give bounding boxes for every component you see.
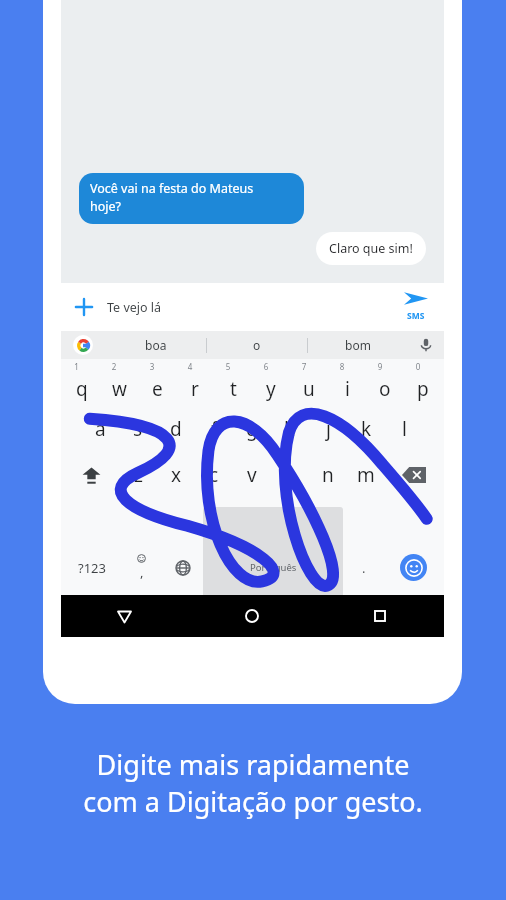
staticText: 1 [58,361,95,372]
button[interactable]: r [176,359,214,406]
staticText: 6 [247,361,285,372]
staticText: z [134,462,143,488]
staticText: Português [250,561,297,574]
button[interactable]: Backspace [385,452,442,498]
staticText: y [266,376,276,402]
staticText: e [152,376,163,402]
button[interactable]: a [81,406,119,452]
staticText: , [140,563,144,581]
staticText: n [322,462,334,488]
staticText: u [303,376,315,402]
staticText: com a Digitação por gesto. [0,783,506,820]
button[interactable]: m [347,452,385,498]
button[interactable]: s [119,406,157,452]
staticText: a [95,416,106,442]
staticText: 7 [285,361,323,372]
staticText: Te vejo lá [107,299,162,316]
button[interactable]: Português [203,507,343,628]
button[interactable]: , [121,498,162,637]
button[interactable]: g [233,406,271,452]
staticText: boa [145,337,167,353]
button[interactable]: f [195,406,233,452]
staticText: d [170,416,182,442]
button[interactable]: l [385,406,423,452]
button[interactable]: p [404,359,442,406]
button[interactable]: o [366,359,404,406]
staticText: v [247,462,257,488]
staticText: ?123 [78,559,106,577]
staticText: r [191,376,199,402]
button[interactable]: Recents [316,595,444,637]
button[interactable]: Add attachment [61,283,107,331]
staticText: j [326,416,331,442]
staticText: b [284,462,296,488]
button[interactable]: x [157,452,195,498]
button[interactable]: Shift [63,452,119,498]
staticText: 0 [399,361,437,372]
button[interactable]: Claro que sim! [316,232,426,265]
button[interactable]: bom [308,331,408,359]
button[interactable]: n [309,452,347,498]
button[interactable]: o [207,331,307,359]
staticText: 9 [361,361,399,372]
staticText: t [230,376,237,402]
staticText: h [284,416,296,442]
button[interactable]: j [309,406,347,452]
button[interactable]: Add attachment [61,283,444,331]
button[interactable]: u [290,359,328,406]
staticText: 4 [171,361,209,372]
staticText: SMS [407,310,425,322]
staticText: q [76,376,88,402]
staticText: m [357,462,375,488]
staticText: Você vai na festa do Mateus hoje? [90,180,254,215]
staticText: o [379,376,391,402]
button[interactable]: ?123 [63,498,121,637]
button[interactable]: z [119,452,157,498]
button[interactable]: Change language [162,498,203,637]
staticText: 5 [209,361,247,372]
staticText: 3 [133,361,171,372]
staticText: f [211,416,218,442]
button[interactable]: Google [61,331,105,359]
button[interactable]: Emoji [384,498,442,637]
button[interactable]: h [271,406,309,452]
staticText: l [402,416,407,442]
button[interactable]: y [252,359,290,406]
button[interactable]: k [347,406,385,452]
staticText: o [253,337,261,353]
staticText: w [112,376,127,402]
button[interactable]: Home [188,595,316,637]
staticText: k [361,416,372,442]
staticText: Digite mais rapidamente [0,746,506,783]
staticText: g [246,416,258,442]
button[interactable]: c [195,452,233,498]
button[interactable]: boa [105,331,206,359]
button[interactable]: e [138,359,176,406]
button[interactable]: Send SMS [388,283,444,331]
button[interactable]: w [100,359,138,406]
button[interactable]: q [63,359,100,406]
button[interactable]: d [157,406,195,452]
button[interactable]: t [214,359,252,406]
button[interactable]: i [328,359,366,406]
staticText: . [362,559,366,577]
button[interactable]: Você vai na festa do Mateus hoje? [79,173,304,224]
staticText: Claro que sim! [329,240,413,257]
staticText: p [417,376,429,402]
staticText: bom [345,337,371,353]
button[interactable]: Back [61,595,188,637]
staticText: c [209,462,219,488]
button[interactable]: Voice input [408,331,444,359]
staticText: x [171,462,182,488]
button[interactable]: b [271,452,309,498]
staticText: 2 [95,361,133,372]
staticText: i [345,376,350,402]
button[interactable]: v [233,452,271,498]
button[interactable]: . [343,498,384,637]
staticText: s [133,416,143,442]
staticText: 8 [323,361,361,372]
